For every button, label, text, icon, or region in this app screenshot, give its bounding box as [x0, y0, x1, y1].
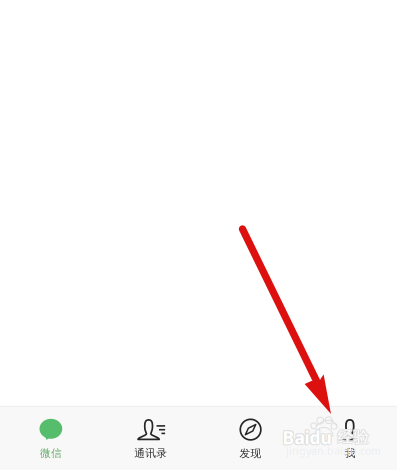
staticText: 经验 — [338, 427, 370, 447]
staticText: 经验 — [337, 427, 369, 447]
button[interactable]: 微信 — [1, 406, 101, 470]
staticText: 经验 — [337, 428, 369, 448]
staticText: Baidu — [282, 426, 331, 449]
staticText: Baidu — [282, 425, 331, 448]
staticText: Baidu — [282, 426, 331, 449]
staticText: 经验 — [337, 427, 369, 447]
staticText: Baidu — [282, 427, 331, 450]
staticText: 经验 — [337, 428, 369, 448]
button[interactable]: 通讯录 — [101, 406, 201, 470]
staticText: Baidu — [283, 425, 332, 448]
staticText: 通讯录 — [134, 447, 167, 460]
staticText: 发现 — [239, 447, 261, 460]
staticText: 微信 — [40, 447, 62, 460]
staticText: Baidu — [283, 426, 332, 449]
staticText: 经验 — [337, 427, 369, 447]
staticText: 经验 — [337, 426, 369, 446]
button[interactable]: 我 — [300, 406, 397, 470]
staticText: Baidu — [282, 425, 331, 448]
button[interactable]: 发现 — [201, 406, 300, 470]
staticText: 我 — [345, 447, 356, 460]
staticText: Baidu — [282, 427, 331, 450]
staticText: jingyan.baidu.com — [286, 443, 381, 458]
staticText: 经验 — [338, 426, 370, 446]
staticText: 经验 — [337, 426, 369, 446]
staticText: Baidu — [282, 426, 331, 449]
